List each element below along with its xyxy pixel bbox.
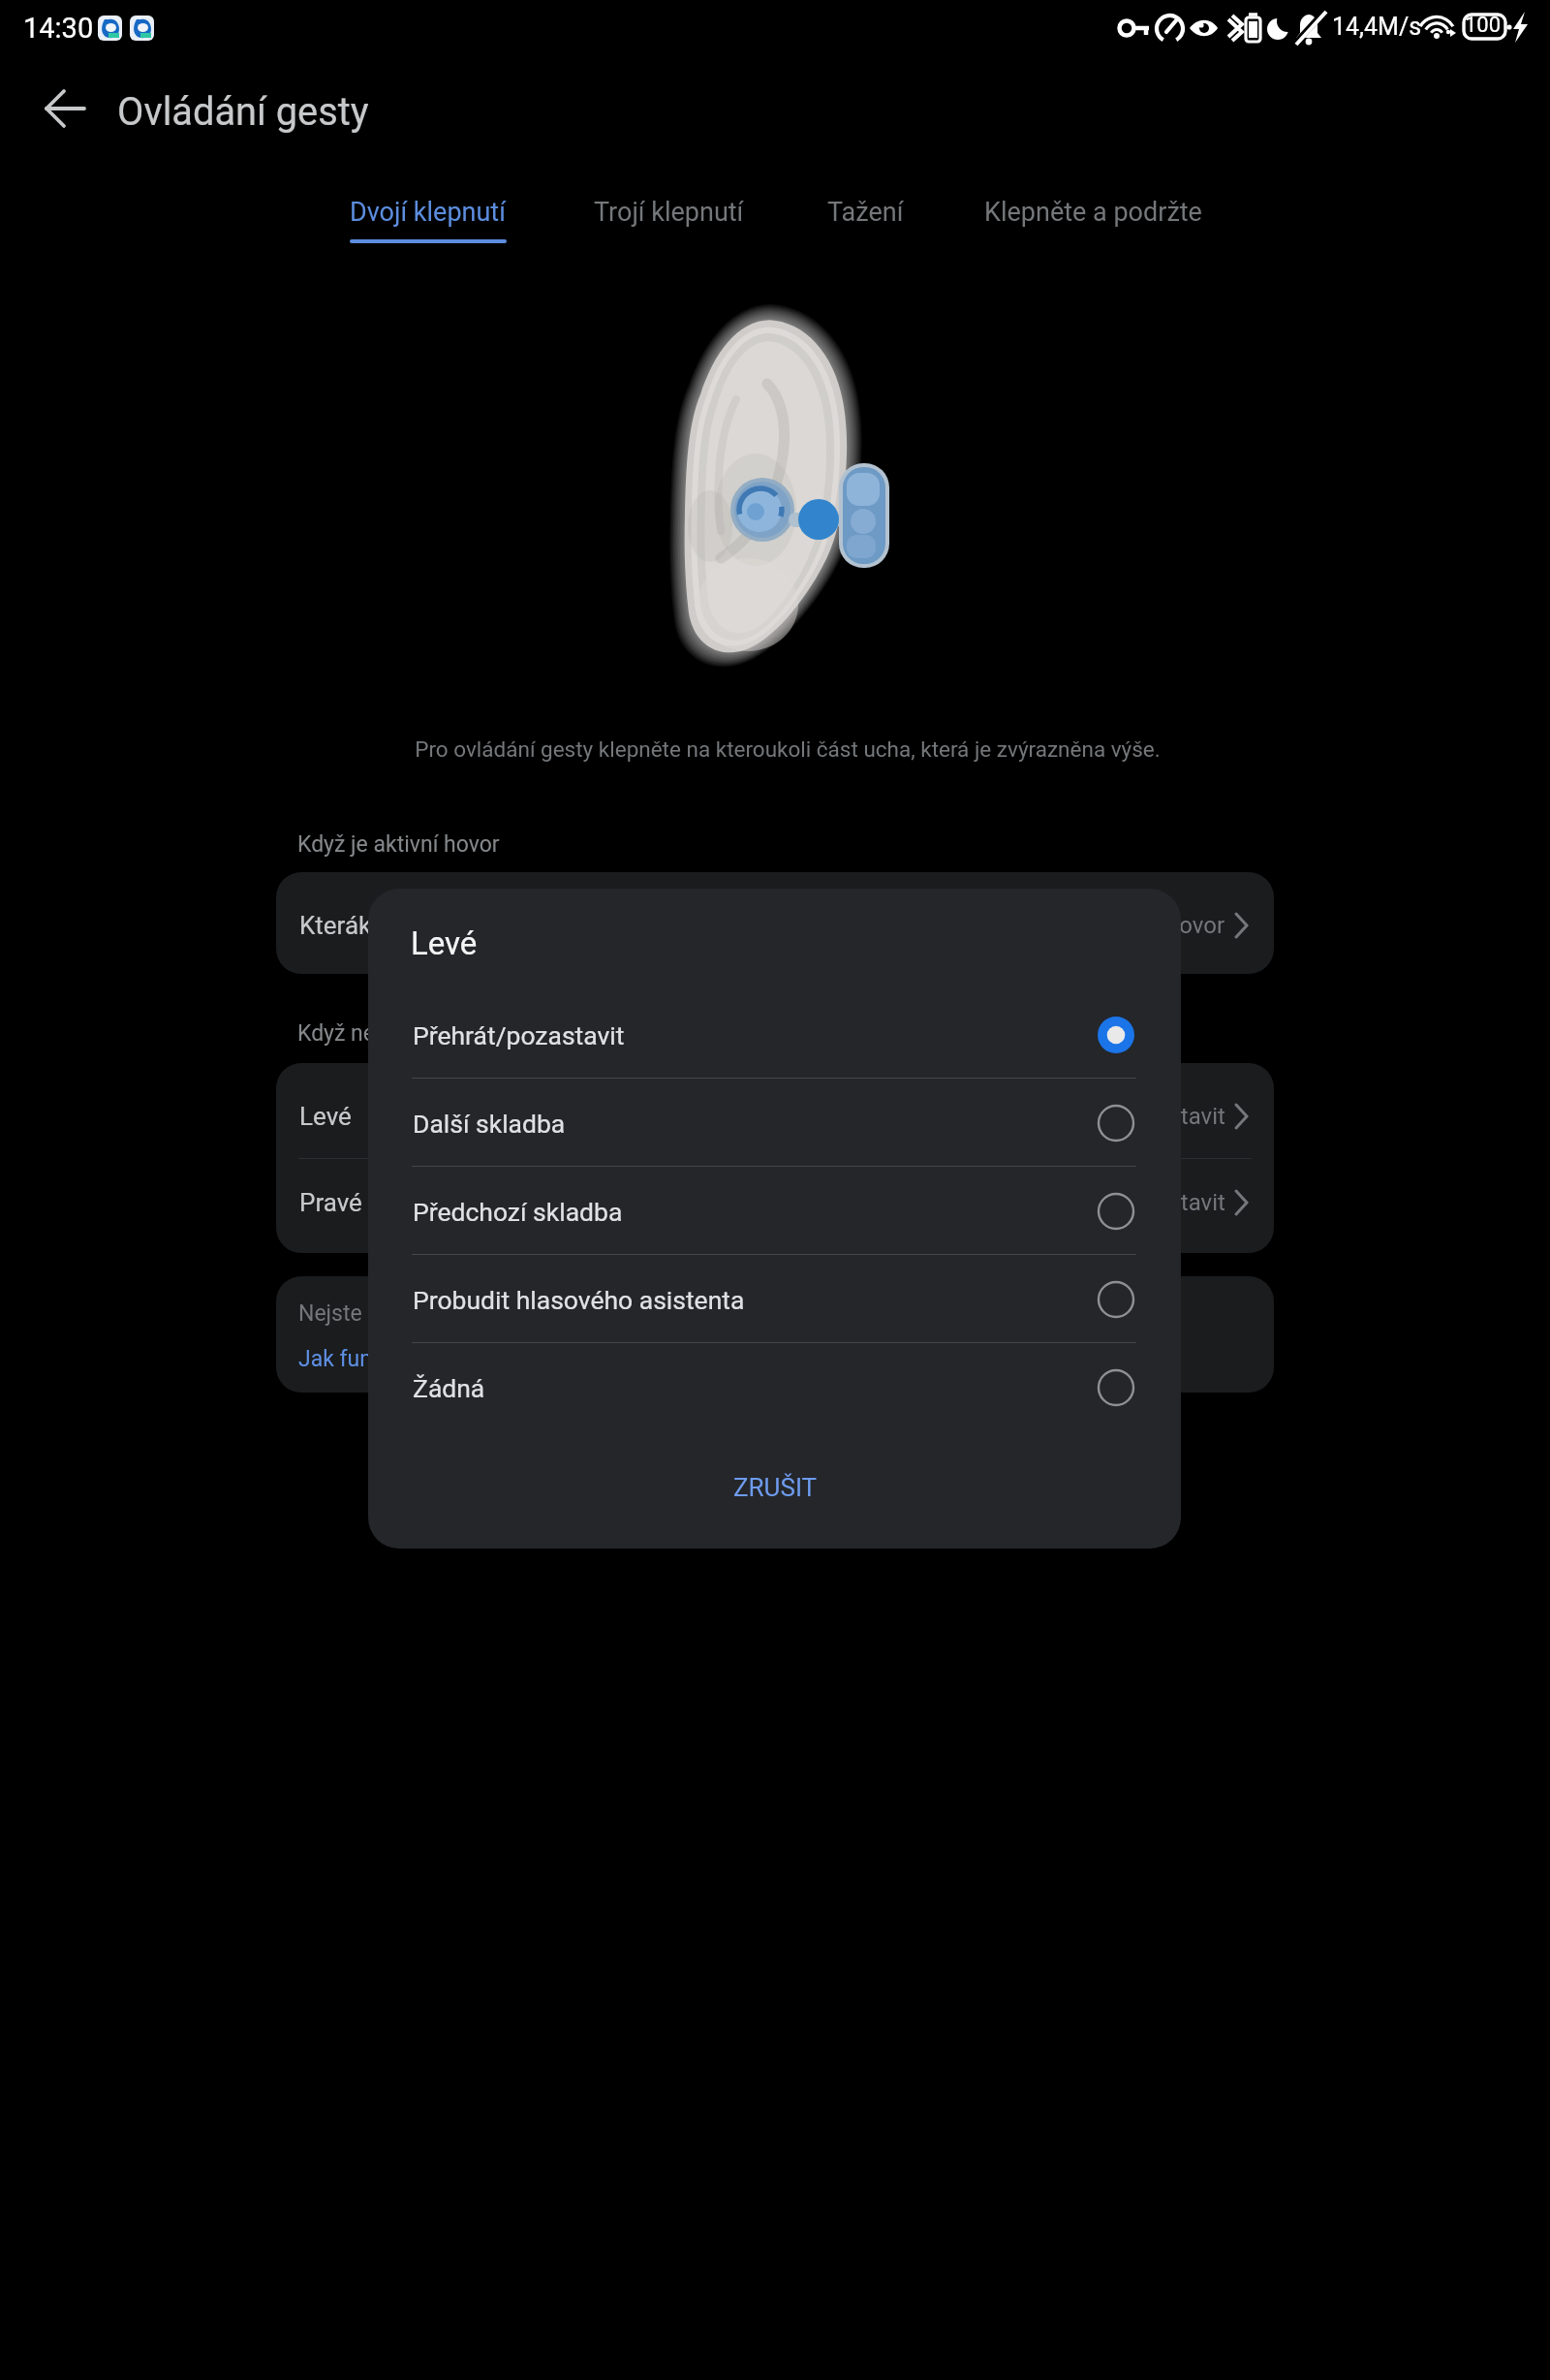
staticText: Pro ovládání gesty klepněte na kteroukol… xyxy=(13,736,1550,762)
button[interactable]: ZRUŠIT xyxy=(368,1444,1181,1549)
staticText: Kterákoli část ucha xyxy=(299,911,513,940)
staticText: Klepněte a podržte xyxy=(984,197,1202,228)
button[interactable]: Levé xyxy=(276,1078,1274,1155)
staticText: Probudit hlasového asistenta xyxy=(413,1285,745,1315)
staticText: Jak funguje ovládání gesty xyxy=(298,1346,563,1372)
staticText: Přehrát/pozastavit xyxy=(1034,1189,1225,1216)
staticText: Pravé xyxy=(299,1188,362,1217)
button[interactable]: Tažení xyxy=(806,176,918,256)
staticText: Levé xyxy=(411,924,478,962)
staticText: Levé xyxy=(299,1102,352,1131)
button[interactable]: Jak funguje ovládání gesty xyxy=(294,1338,594,1377)
staticText: Trojí klepnutí xyxy=(594,197,744,228)
button[interactable]: Trojí klepnutí xyxy=(573,176,764,256)
button[interactable]: Pravé xyxy=(276,1164,1274,1241)
staticText: Když je aktivní hovor xyxy=(297,831,500,858)
staticText: Nejste si jisti? xyxy=(298,1300,436,1327)
staticText: Dvojí klepnutí xyxy=(350,197,506,228)
button[interactable]: Zpět xyxy=(21,65,108,152)
button[interactable]: Dvojí klepnutí xyxy=(328,176,528,256)
staticText: 100 xyxy=(1465,13,1502,38)
button[interactable]: Přehrát/pozastavit xyxy=(368,991,1181,1079)
button[interactable]: Další skladba xyxy=(368,1080,1181,1167)
staticText: ZRUŠIT xyxy=(733,1473,818,1502)
staticText: Žádná xyxy=(413,1373,485,1403)
staticText: 14:30 xyxy=(23,12,94,45)
staticText: Předchozí skladba xyxy=(413,1197,623,1227)
button[interactable]: Předchozí skladba xyxy=(368,1168,1181,1255)
button[interactable]: Žádná xyxy=(368,1344,1181,1431)
staticText: Další skladba xyxy=(413,1109,566,1139)
staticText: Ovládání gesty xyxy=(117,89,369,135)
staticText: 14,4M/s xyxy=(1332,13,1422,41)
staticText: Přehrát/pozastavit xyxy=(1034,1103,1225,1130)
staticText: Přijmout/ukončit hovor xyxy=(987,912,1225,939)
button[interactable]: Probudit hlasového asistenta xyxy=(368,1256,1181,1343)
staticText: Tažení xyxy=(827,197,904,228)
staticText: Přehrát/pozastavit xyxy=(413,1020,625,1050)
staticText: Když nemáte aktivní hovor xyxy=(297,1020,558,1047)
button[interactable]: Kterákoli část ucha xyxy=(276,887,1274,964)
button[interactable]: Klepněte a podržte xyxy=(963,176,1222,256)
